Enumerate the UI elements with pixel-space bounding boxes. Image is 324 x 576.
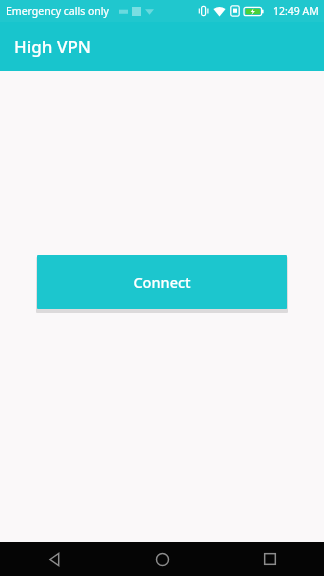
button[interactable]: Connect bbox=[37, 255, 287, 309]
staticText: High VPN bbox=[14, 35, 91, 58]
staticText: Emergency calls only bbox=[6, 4, 109, 18]
staticText: 12:49 AM bbox=[273, 4, 319, 18]
button[interactable]: Recents bbox=[216, 542, 324, 576]
button[interactable]: Back bbox=[0, 542, 108, 576]
staticText: Connect bbox=[133, 272, 191, 292]
button[interactable]: Home bbox=[108, 542, 216, 576]
